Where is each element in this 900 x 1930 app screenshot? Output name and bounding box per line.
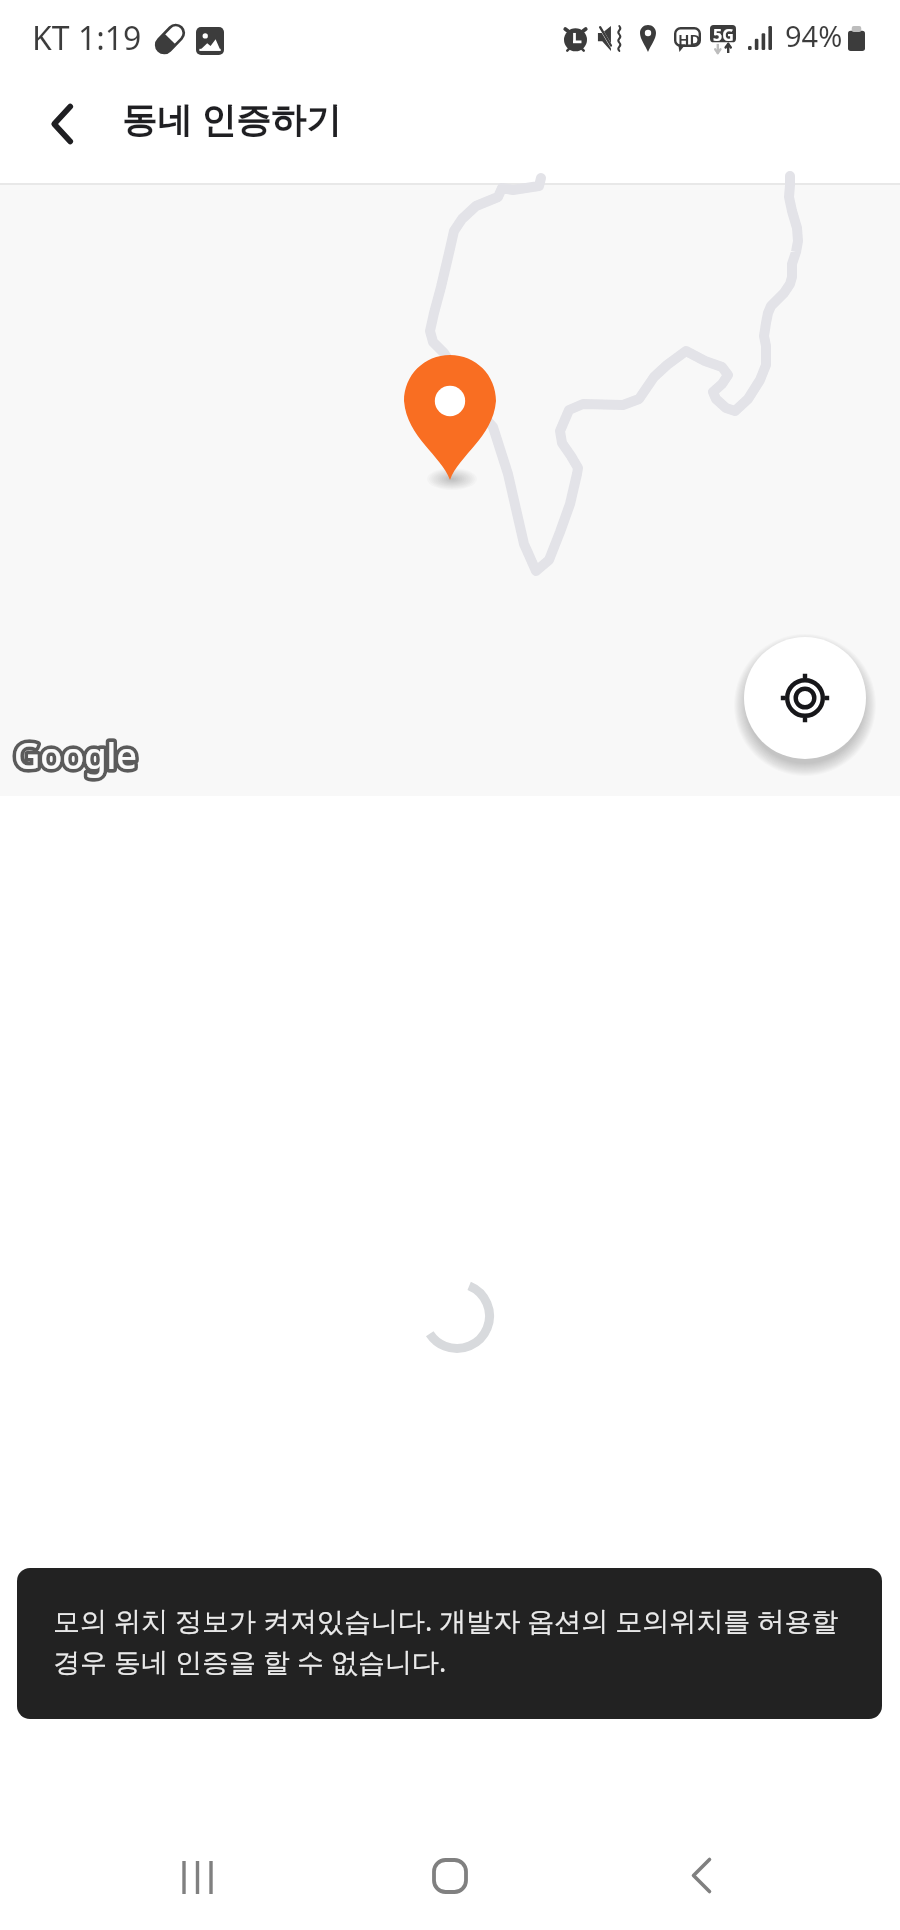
staticText: HD	[678, 29, 701, 49]
button[interactable]: My location	[744, 637, 866, 759]
button[interactable]: Back	[660, 1834, 744, 1912]
staticText: KT 1:19	[32, 16, 142, 60]
staticText: 모의 위치 정보가 켜져있습니다. 개발자 옵션의 모의위치를 허용할 경우 동…	[53, 1602, 839, 1680]
staticText: 동네 인증하기	[122, 95, 342, 143]
staticText: Google	[14, 731, 137, 780]
button[interactable]: Back	[23, 85, 101, 163]
button[interactable]: Recent apps	[148, 1834, 232, 1912]
staticText: Google	[14, 731, 137, 780]
staticText: 94%	[785, 16, 843, 55]
button[interactable]: Home	[408, 1834, 492, 1912]
staticText: 5G	[713, 24, 734, 46]
